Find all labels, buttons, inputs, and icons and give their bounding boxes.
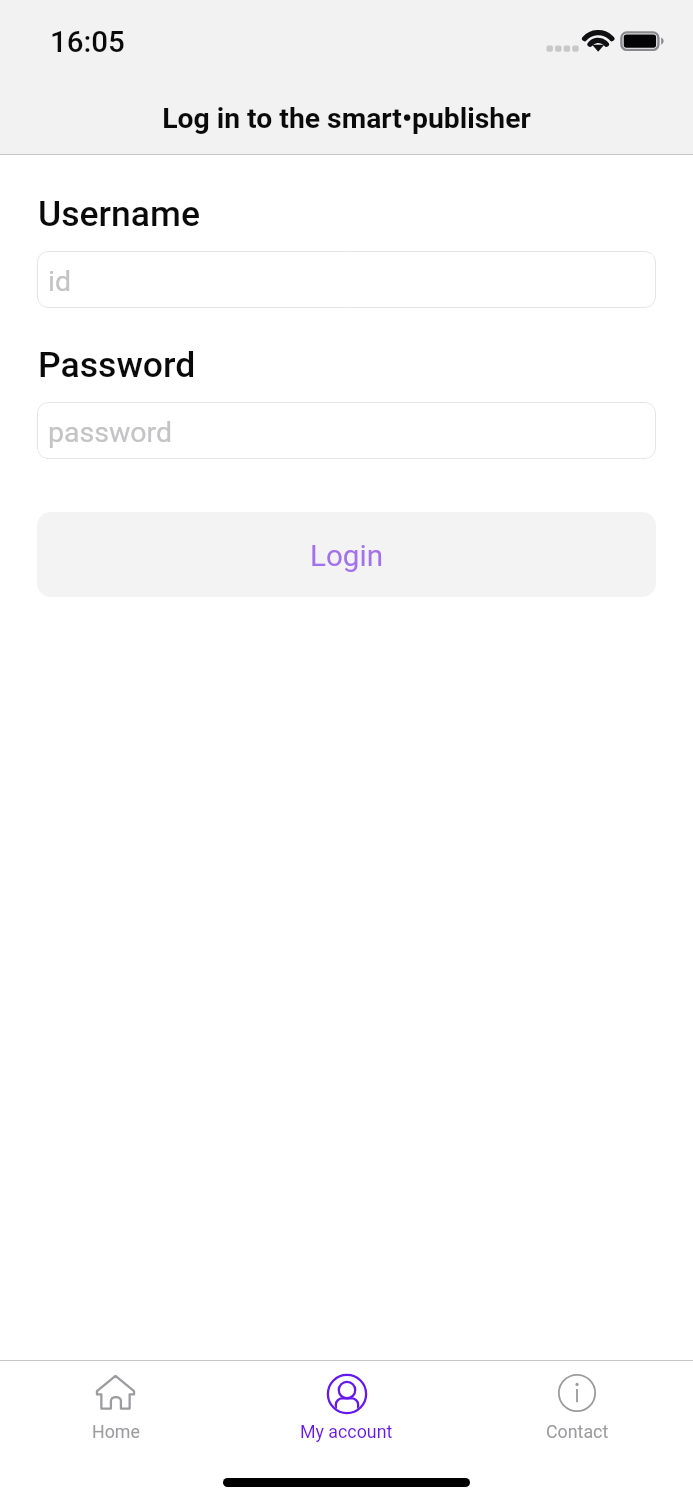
staticText: 16:05 [50, 25, 125, 60]
staticText: Log in to the smart•publisher [0, 102, 693, 135]
staticText: Username [38, 193, 200, 235]
staticText: My account [300, 1421, 393, 1442]
staticText: Home [92, 1421, 140, 1442]
button[interactable]: Home [0, 1361, 231, 1500]
staticText: password [48, 416, 173, 449]
staticText: Contact [546, 1421, 609, 1442]
button[interactable]: Login [37, 512, 656, 597]
staticText: Login [310, 539, 383, 574]
staticText: Password [38, 344, 196, 386]
button[interactable]: Contact [462, 1361, 693, 1500]
button[interactable]: id [37, 251, 656, 308]
staticText: id [48, 265, 72, 298]
button[interactable]: password [37, 402, 656, 459]
button[interactable]: My account [231, 1361, 462, 1500]
other: Status: signal, wifi, battery [540, 25, 670, 57]
